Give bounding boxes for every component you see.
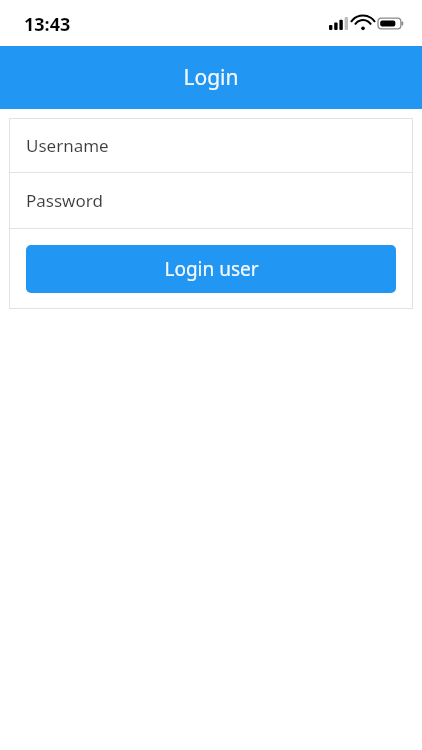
button[interactable]: Password xyxy=(9,173,413,228)
button[interactable]: Username xyxy=(9,118,413,172)
staticText: Password xyxy=(26,189,103,212)
staticText: 13:43 xyxy=(24,12,71,37)
staticText: Username xyxy=(26,134,109,157)
button[interactable]: Login user xyxy=(26,245,396,293)
staticText: Login user xyxy=(164,256,259,282)
staticText: Login xyxy=(183,63,239,92)
